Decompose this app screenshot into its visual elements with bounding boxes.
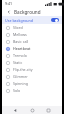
staticText: 9:41 <box>5 1 13 6</box>
button[interactable]: Mellows <box>2 31 62 38</box>
staticText: Glimmer <box>13 74 28 79</box>
button[interactable]: Back <box>12 107 19 114</box>
staticText: Tremolo <box>13 53 27 58</box>
staticText: Flip-the-city <box>13 67 33 72</box>
button[interactable]: Sliced <box>2 24 62 31</box>
button[interactable]: Spinning <box>2 80 62 87</box>
button[interactable]: Flip-the-city <box>2 66 62 73</box>
staticText: Spinning <box>13 81 28 86</box>
staticText: Background <box>14 9 41 15</box>
button[interactable]: Static <box>2 59 62 66</box>
staticText: Sliced <box>13 25 23 30</box>
staticText: Use background <box>5 18 34 23</box>
staticText: Solo <box>13 88 21 93</box>
button[interactable]: Use background <box>2 16 62 24</box>
button[interactable]: Solo <box>2 87 62 94</box>
button[interactable]: Heartbeat <box>2 45 62 52</box>
button[interactable]: Home <box>29 107 36 114</box>
button[interactable]: Back <box>5 8 12 15</box>
staticText: Static <box>13 60 23 65</box>
button[interactable]: Tremolo <box>2 52 62 59</box>
staticText: Heartbeat <box>13 46 31 51</box>
button[interactable]: Glimmer <box>2 73 62 80</box>
button[interactable]: Recents <box>45 107 52 114</box>
button[interactable]: Basic call <box>2 38 62 45</box>
staticText: Basic call <box>13 39 29 44</box>
staticText: Mellows <box>13 32 27 37</box>
